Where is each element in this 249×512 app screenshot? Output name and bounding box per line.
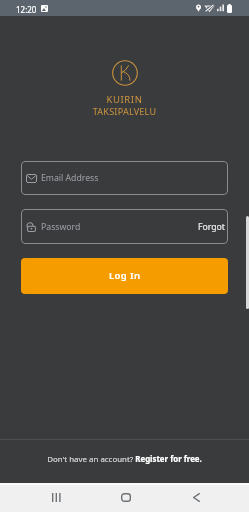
staticText: Don't have an account? Register for free… <box>47 454 202 465</box>
button[interactable]: Password <box>21 209 228 244</box>
staticText: Password <box>41 221 81 233</box>
button[interactable]: Recents <box>36 485 76 510</box>
staticText: TAKSIPALVELU <box>0 105 249 117</box>
button[interactable]: Email Address <box>21 161 228 195</box>
staticText: 12:20 <box>16 4 37 15</box>
staticText: Forgot <box>198 221 226 233</box>
staticText: Email Address <box>41 172 99 184</box>
staticText: KUIRIN <box>0 93 249 106</box>
button[interactable]: Log In <box>21 258 228 294</box>
button[interactable]: Home <box>106 485 146 510</box>
staticText: Log In <box>109 269 141 282</box>
button[interactable]: Don't have an account? Register for free… <box>0 442 249 477</box>
button[interactable]: Back <box>176 485 216 510</box>
button[interactable]: Forgot <box>196 221 226 233</box>
